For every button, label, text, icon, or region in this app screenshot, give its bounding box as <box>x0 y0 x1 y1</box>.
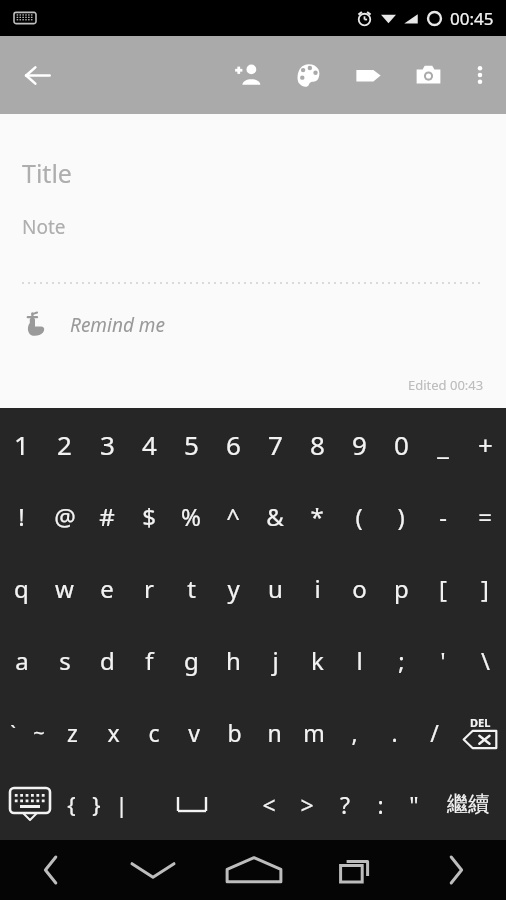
staticText: ? <box>340 789 350 820</box>
button[interactable]: 2 <box>43 408 86 480</box>
button[interactable]: ~ <box>26 696 52 768</box>
button[interactable]: Colour <box>284 51 332 99</box>
button[interactable]: k <box>296 624 338 696</box>
button[interactable]: ] <box>464 552 506 624</box>
button[interactable]: p <box>380 552 422 624</box>
staticText: ( <box>355 500 363 533</box>
button[interactable]: s <box>43 624 86 696</box>
button[interactable]: ) <box>380 480 422 552</box>
staticText: _ <box>437 427 449 462</box>
button[interactable]: " <box>397 768 430 840</box>
button[interactable]: Delete <box>454 696 506 768</box>
button[interactable]: Recent apps <box>304 840 405 900</box>
button[interactable]: | <box>109 768 134 840</box>
button[interactable]: j <box>254 624 296 696</box>
button[interactable]: f <box>128 624 170 696</box>
button[interactable]: 6 <box>212 408 254 480</box>
button[interactable]: < <box>250 768 288 840</box>
button[interactable]: z <box>52 696 93 768</box>
button[interactable]: 1 <box>0 408 43 480</box>
button[interactable]: # <box>86 480 128 552</box>
staticText: k <box>311 644 324 677</box>
button[interactable]: y <box>212 552 254 624</box>
button[interactable]: Back <box>102 840 203 900</box>
button[interactable]: d <box>86 624 128 696</box>
staticText: Note <box>22 214 66 240</box>
button[interactable]: / <box>414 696 454 768</box>
staticText: : <box>377 789 384 820</box>
button[interactable]: [ <box>422 552 464 624</box>
button[interactable]: a <box>0 624 43 696</box>
button[interactable]: Label <box>344 51 392 99</box>
button[interactable]: t <box>170 552 212 624</box>
staticText: c <box>148 717 160 748</box>
button[interactable]: Hide keyboard <box>0 768 59 840</box>
button[interactable]: Back <box>10 48 64 102</box>
button[interactable]: ^ <box>212 480 254 552</box>
button[interactable]: h <box>212 624 254 696</box>
button[interactable]: ? <box>326 768 364 840</box>
button[interactable]: 繼續 <box>430 768 506 840</box>
button[interactable]: @ <box>43 480 86 552</box>
button[interactable]: 9 <box>338 408 380 480</box>
button[interactable]: x <box>93 696 134 768</box>
staticText: 0 <box>394 427 409 462</box>
button[interactable]: n <box>254 696 294 768</box>
button[interactable]: Camera <box>404 51 452 99</box>
button[interactable]: ! <box>0 480 43 552</box>
button[interactable]: $ <box>128 480 170 552</box>
button[interactable]: + <box>464 408 506 480</box>
button[interactable]: Home <box>203 840 304 900</box>
button[interactable]: q <box>0 552 43 624</box>
button[interactable]: & <box>254 480 296 552</box>
button[interactable]: 3 <box>86 408 128 480</box>
button[interactable]: Remind me <box>0 306 187 344</box>
staticText: 7 <box>268 427 283 462</box>
button[interactable]: ` <box>0 696 26 768</box>
button[interactable]: 5 <box>170 408 212 480</box>
button[interactable]: \ <box>464 624 506 696</box>
button[interactable]: m <box>294 696 334 768</box>
button[interactable]: Add person <box>224 51 272 99</box>
staticText: = <box>478 500 492 533</box>
button[interactable]: b <box>214 696 254 768</box>
button[interactable]: * <box>296 480 338 552</box>
button[interactable]: 4 <box>128 408 170 480</box>
button[interactable]: e <box>86 552 128 624</box>
button[interactable]: ; <box>380 624 422 696</box>
staticText: ' <box>440 644 446 677</box>
button[interactable]: _ <box>422 408 464 480</box>
button[interactable]: u <box>254 552 296 624</box>
button[interactable]: More options <box>456 51 504 99</box>
button[interactable]: Next <box>405 840 506 900</box>
button[interactable]: , <box>334 696 374 768</box>
button[interactable]: = <box>464 480 506 552</box>
button[interactable]: Title <box>0 150 506 196</box>
button[interactable]: c <box>134 696 174 768</box>
button[interactable]: > <box>288 768 326 840</box>
button[interactable]: - <box>422 480 464 552</box>
button[interactable]: i <box>296 552 338 624</box>
button[interactable]: { <box>59 768 84 840</box>
button[interactable]: o <box>338 552 380 624</box>
button[interactable]: : <box>364 768 397 840</box>
staticText: 9 <box>352 427 367 462</box>
button[interactable]: % <box>170 480 212 552</box>
button[interactable]: Note <box>0 210 506 244</box>
staticText: + <box>478 427 493 462</box>
button[interactable] <box>134 768 250 840</box>
button[interactable]: 0 <box>380 408 422 480</box>
button[interactable]: r <box>128 552 170 624</box>
button[interactable]: g <box>170 624 212 696</box>
button[interactable]: } <box>84 768 109 840</box>
button[interactable]: ( <box>338 480 380 552</box>
button[interactable]: Previous <box>0 840 102 900</box>
button[interactable]: w <box>43 552 86 624</box>
button[interactable]: l <box>338 624 380 696</box>
button[interactable]: . <box>374 696 414 768</box>
button[interactable]: 7 <box>254 408 296 480</box>
staticText: z <box>67 717 78 748</box>
button[interactable]: ' <box>422 624 464 696</box>
button[interactable]: v <box>174 696 214 768</box>
button[interactable]: 8 <box>296 408 338 480</box>
